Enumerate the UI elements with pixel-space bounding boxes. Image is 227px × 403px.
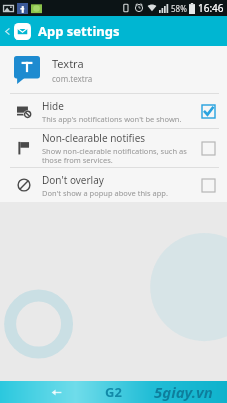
button[interactable]: Non-clearable toggle [197,137,219,159]
button[interactable]: Back [0,16,14,46]
button[interactable]: Back [45,381,67,403]
button[interactable]: Don't overlay [0,168,227,202]
button[interactable]: Textra [0,46,227,93]
staticText: App settings [38,22,120,40]
staticText: 16:46 [198,1,224,15]
staticText: Don't overlay [42,173,104,187]
button[interactable]: Non-clearable notifies [0,129,227,167]
staticText: Non-clearable notifies [42,131,146,145]
staticText: Hide [42,99,64,113]
staticText: G2 [105,383,122,401]
staticText: Textra [52,56,84,71]
staticText: 58% [171,3,187,14]
button[interactable]: Don't overlay toggle [197,174,219,196]
button[interactable]: Hide toggle [197,100,219,122]
staticText: Don't show a popup above this app. [42,188,168,198]
staticText: This app's notifications won't be shown. [42,114,182,124]
staticText: 5giay.vn [154,382,213,402]
staticText: Show non-clearable notifications, such a… [42,146,191,166]
staticText: com.textra [52,73,93,84]
button[interactable]: Hide [0,94,227,128]
